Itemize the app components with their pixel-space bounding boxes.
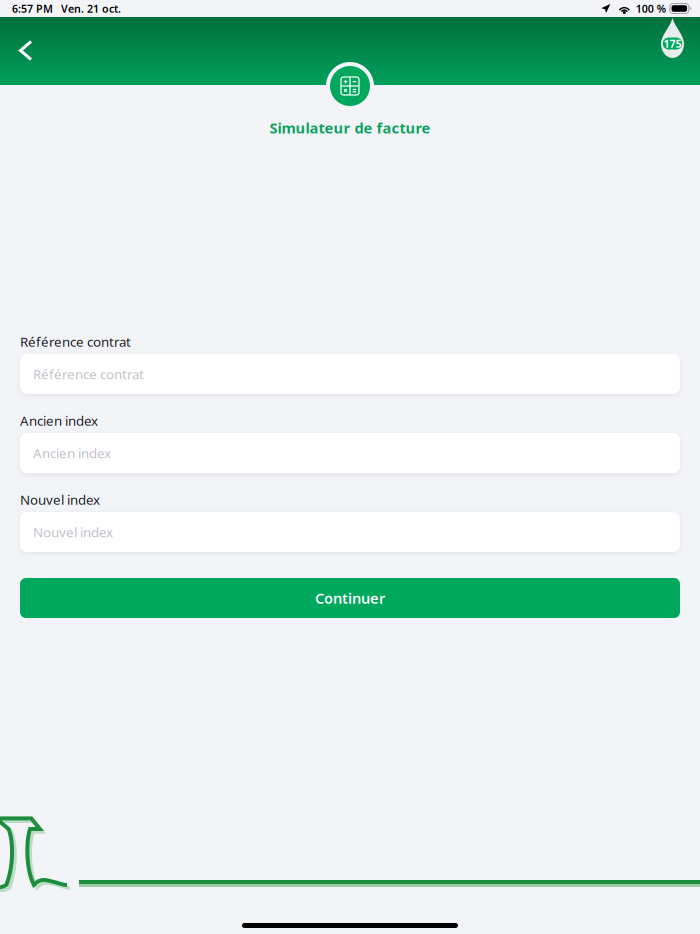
button[interactable]: Ancien index [20, 433, 680, 473]
staticText: Référence contrat [20, 333, 131, 350]
staticText: Nouvel index [20, 491, 100, 508]
staticText: Nouvel index [33, 523, 113, 541]
button[interactable]: Continuer [20, 578, 680, 618]
staticText: 175 [663, 36, 681, 51]
staticText: Ancien index [20, 412, 98, 429]
staticText: 6:57 PM [12, 1, 53, 16]
staticText: Ancien index [33, 444, 111, 462]
staticText: Référence contrat [33, 365, 144, 383]
staticText: Continuer [315, 588, 385, 608]
button[interactable]: Retour [0, 17, 50, 71]
button[interactable]: Nouvel index [20, 512, 680, 552]
button[interactable]: Référence contrat [20, 354, 680, 394]
staticText: Ven. 21 oct. [61, 1, 121, 16]
staticText: Simulateur de facture [269, 118, 430, 137]
staticText: 100 % [636, 1, 666, 16]
